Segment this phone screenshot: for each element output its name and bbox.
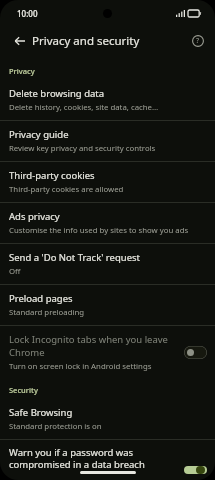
button[interactable]: Warn you if a password was compromised i… <box>0 440 215 480</box>
staticText: Privacy <box>9 66 35 76</box>
staticText: Customise the info used by sites to show… <box>9 225 189 236</box>
staticText: Preload pages <box>9 292 73 305</box>
button[interactable]: On <box>184 466 207 474</box>
staticText: 10:00 <box>17 8 38 19</box>
staticText: Delete browsing data <box>9 87 105 100</box>
staticText: Delete history, cookies, site data, cach… <box>9 102 159 113</box>
button[interactable]: Preload pages <box>0 285 215 325</box>
staticText: Privacy guide <box>9 128 69 141</box>
staticText: Third-party cookies are allowed <box>9 184 124 195</box>
button[interactable]: Delete browsing data <box>0 80 215 120</box>
staticText: Warn you if a password was compromised i… <box>9 446 178 471</box>
staticText: Ads privacy <box>9 210 60 223</box>
staticText: Send a 'Do Not Track' request <box>9 251 140 264</box>
staticText: Privacy and security <box>32 33 140 49</box>
button[interactable]: Ads privacy <box>0 203 215 243</box>
button[interactable]: Third-party cookies <box>0 162 215 202</box>
staticText: Lock Incognito tabs when you leave Chrom… <box>9 333 178 359</box>
button[interactable]: Lock Incognito tabs when you leave Chrom… <box>0 326 215 379</box>
button[interactable]: Safe Browsing <box>0 399 215 439</box>
staticText: Review key privacy and security controls <box>9 143 156 154</box>
staticText: Third-party cookies <box>9 169 95 182</box>
staticText: Off <box>9 266 21 277</box>
button[interactable]: Back <box>8 29 32 53</box>
staticText: Security <box>9 385 38 395</box>
staticText: Standard preloading <box>9 307 85 318</box>
staticText: ? <box>196 36 200 46</box>
button[interactable]: Privacy guide <box>0 121 215 161</box>
staticText: Turn on screen lock in Android settings <box>9 361 152 372</box>
staticText: Safe Browsing <box>9 406 73 419</box>
button[interactable]: Send a 'Do Not Track' request <box>0 244 215 284</box>
button[interactable]: Off <box>184 346 207 359</box>
staticText: When you use a password, Chrome warns yo… <box>9 473 178 474</box>
staticText: Standard protection is on <box>9 421 102 432</box>
button[interactable]: Help <box>187 30 209 52</box>
